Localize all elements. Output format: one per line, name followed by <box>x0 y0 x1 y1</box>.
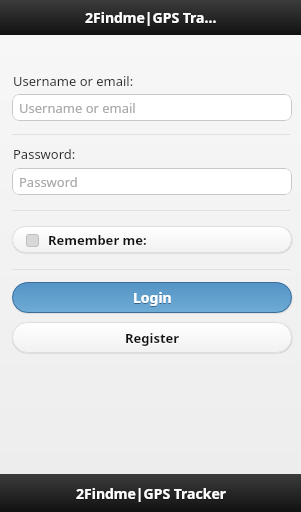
button[interactable]: Remember me: <box>12 226 292 253</box>
button[interactable]: Login <box>12 282 292 313</box>
button[interactable]: Password <box>12 168 292 195</box>
staticText: Remember me: <box>48 231 147 249</box>
button[interactable]: Register <box>12 322 292 353</box>
staticText: Login <box>133 288 172 307</box>
staticText: Username or email: <box>13 72 134 90</box>
staticText: Password: <box>13 145 76 163</box>
staticText: Register <box>125 329 180 347</box>
button[interactable]: Username or email <box>12 94 292 121</box>
staticText: 2Findme|GPS Tracker <box>76 484 226 503</box>
staticText: Password <box>19 173 78 191</box>
staticText: 2Findme|GPS Tra… <box>85 8 217 27</box>
staticText: Username or email <box>19 99 136 117</box>
